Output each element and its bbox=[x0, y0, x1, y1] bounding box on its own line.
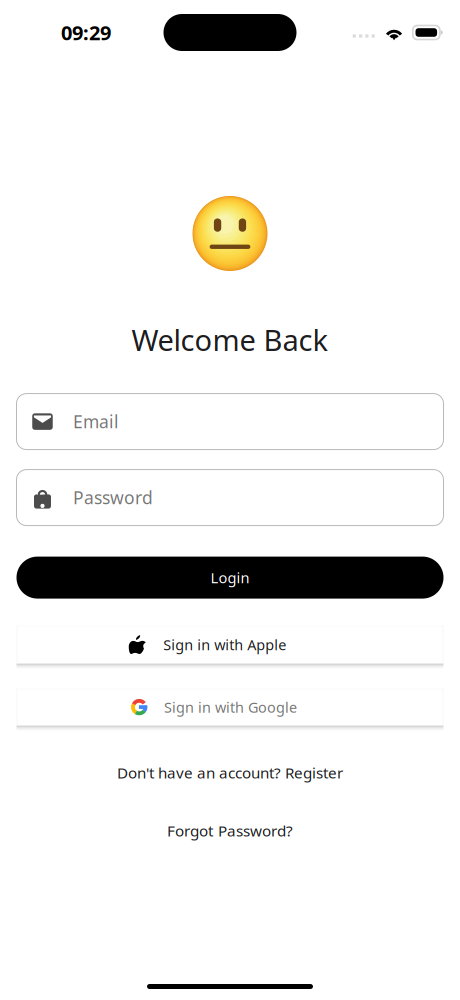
staticText: Email bbox=[73, 410, 119, 433]
staticText: Sign in with Google bbox=[164, 697, 297, 717]
button[interactable]: Forgot Password? bbox=[0, 820, 460, 842]
staticText: Welcome Back bbox=[131, 320, 328, 360]
button[interactable]: Email bbox=[16, 394, 443, 450]
staticText: Sign in with Apple bbox=[163, 635, 286, 654]
staticText: Don't have an account? Register bbox=[117, 762, 343, 783]
staticText: Forgot Password? bbox=[167, 820, 293, 841]
button[interactable]: Password bbox=[16, 470, 443, 526]
button[interactable]: Sign in with Apple bbox=[16, 626, 443, 669]
button[interactable]: Sign in with Google bbox=[16, 689, 443, 731]
staticText: 09:29 bbox=[61, 19, 111, 46]
staticText: Login bbox=[210, 568, 249, 588]
staticText: Password bbox=[73, 486, 153, 509]
button[interactable]: Login bbox=[16, 557, 443, 599]
button[interactable]: Don't have an account? Register bbox=[0, 762, 460, 784]
